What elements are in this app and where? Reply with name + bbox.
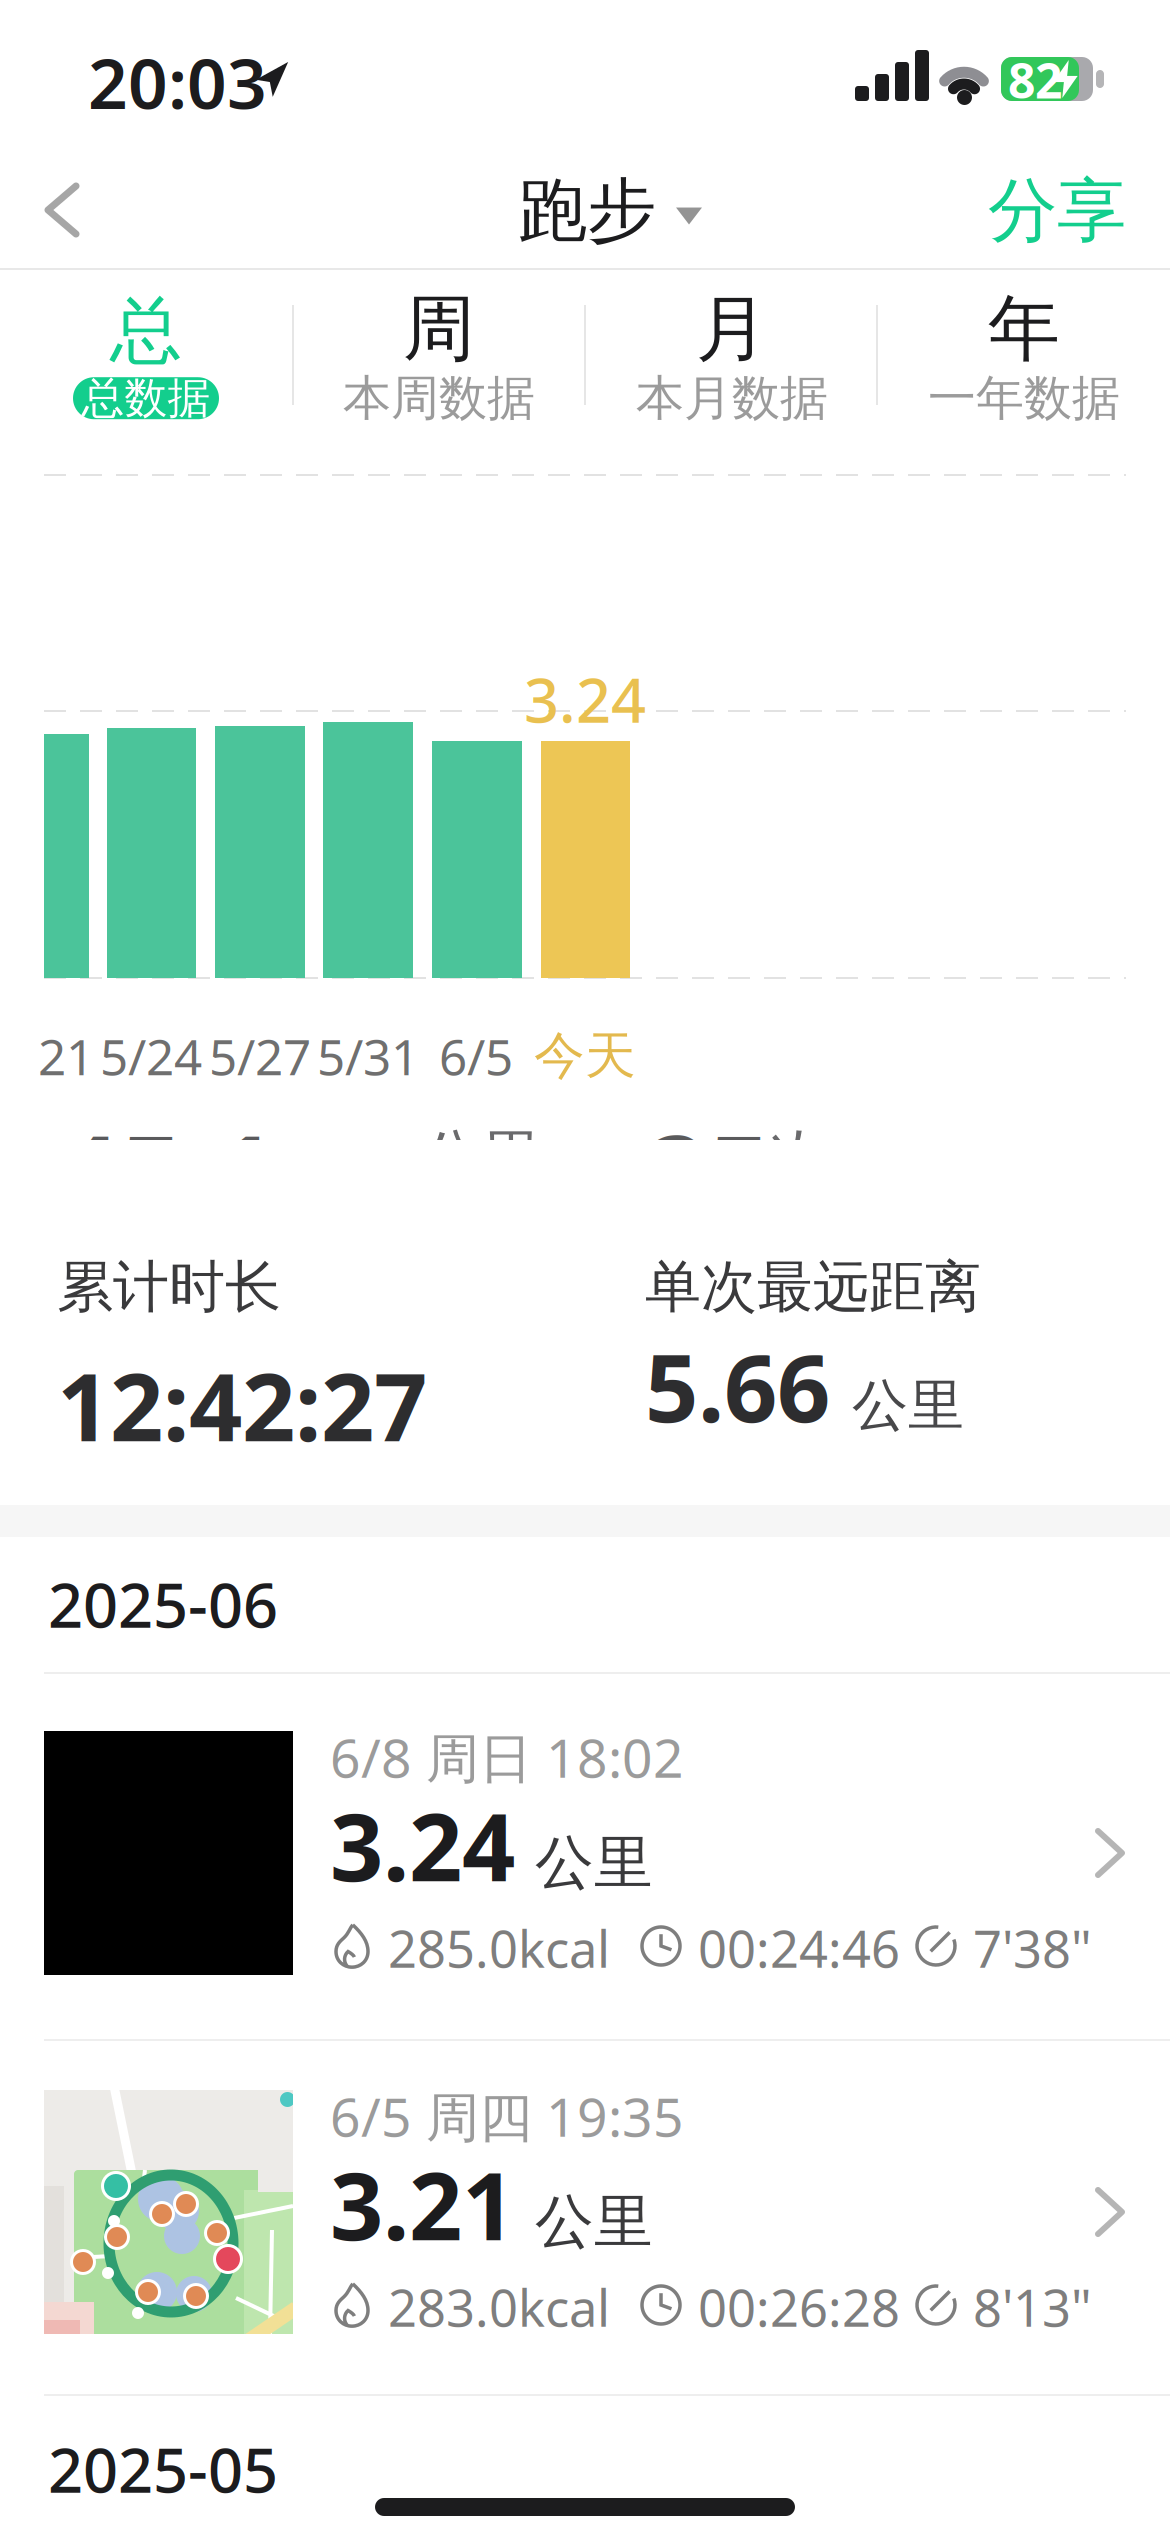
staticText: 5.66 [645, 1324, 830, 1448]
staticText: 公里 [535, 2186, 653, 2258]
staticText: 公里 [852, 1371, 964, 1440]
staticText: 公里 [420, 1121, 542, 1196]
staticText: 3.24 [524, 658, 646, 740]
staticText: 本周数据 [343, 369, 535, 428]
button[interactable]: Back [19, 167, 105, 253]
staticText: 6/5 [439, 1023, 513, 1089]
staticText: 5/31 [317, 1023, 419, 1089]
button[interactable]: 6/5 周四 19:35 [0, 2032, 1170, 2396]
staticText: 总数据 [81, 372, 210, 424]
staticText: 21 [38, 1023, 94, 1089]
staticText: 7'38" [973, 1914, 1092, 1982]
staticText: 5/27 [209, 1023, 311, 1089]
button[interactable]: 分享 [988, 168, 1126, 254]
staticText: 20:03 [88, 36, 267, 128]
staticText: 2025-05 [48, 2428, 278, 2510]
staticText: 6/8 周日 18:02 [330, 1722, 684, 1792]
button[interactable]: 周 [293, 290, 585, 416]
button[interactable]: 6/8 周日 18:02 [0, 1673, 1170, 2037]
button[interactable]: 总 [0, 290, 292, 416]
staticText: 公里 [535, 1827, 653, 1899]
staticText: 8'13" [973, 2273, 1092, 2341]
staticText: 本月数据 [636, 369, 828, 428]
staticText: 2025-06 [48, 1563, 278, 1645]
staticText: 单次最远距离 [645, 1253, 981, 1321]
staticText: 283.0kcal [388, 2273, 610, 2341]
staticText: 00:26:28 [698, 2273, 900, 2341]
staticText: 3.24 [330, 1783, 515, 1907]
button[interactable]: 月 [586, 290, 878, 416]
staticText: 45:11.7 [57, 1100, 397, 1245]
staticText: 周 [403, 285, 475, 373]
staticText: 分享 [988, 168, 1126, 254]
staticText: 一年数据 [928, 369, 1120, 428]
staticText: 年 [988, 285, 1060, 373]
staticText: 12:42:27 [57, 1343, 427, 1467]
staticText: 285.0kcal [388, 1914, 610, 1982]
staticText: 总 [110, 287, 182, 375]
staticText: 今天 [534, 1025, 636, 1087]
staticText: 00:24:46 [698, 1914, 900, 1982]
button[interactable]: 跑步 [518, 168, 702, 254]
staticText: 82 [1008, 48, 1062, 112]
staticText: 跑步 [518, 168, 656, 254]
staticText: 3.21 [330, 2142, 515, 2266]
staticText: 5/24 [100, 1023, 202, 1089]
staticText: 累计时长 [57, 1253, 281, 1321]
staticText: 25 [645, 1100, 771, 1245]
staticText: 6/5 周四 19:35 [330, 2081, 684, 2151]
staticText: 次 [769, 1121, 830, 1196]
button[interactable]: 年 [878, 290, 1170, 416]
staticText: 月 [696, 285, 768, 373]
